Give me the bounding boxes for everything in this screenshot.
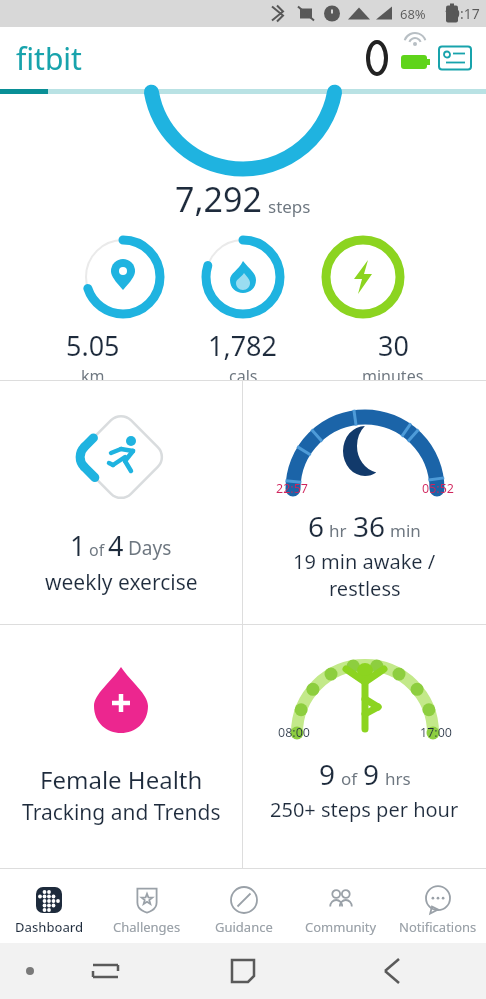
staticText: Challenges xyxy=(113,918,181,936)
button[interactable]: Community xyxy=(292,877,389,943)
staticText: 22:57 xyxy=(276,480,308,497)
staticText: min xyxy=(390,519,421,542)
button[interactable]: 1 xyxy=(0,381,242,624)
staticText: 9 xyxy=(319,755,336,793)
staticText: Days xyxy=(128,535,172,561)
staticText: Notifications xyxy=(399,918,477,936)
staticText: 05:52 xyxy=(422,480,454,497)
staticText: restless xyxy=(329,575,401,602)
staticText: 19:17 xyxy=(444,4,480,23)
staticText: 1,782 xyxy=(208,327,278,364)
staticText: weekly exercise xyxy=(45,568,198,597)
staticText: 250+ steps per hour xyxy=(270,796,459,823)
button[interactable]: Challenges xyxy=(98,877,195,943)
staticText: 08:00 xyxy=(278,724,310,741)
staticText: hr xyxy=(329,519,347,542)
staticText: 68% xyxy=(400,5,426,23)
staticText: 30 xyxy=(378,327,409,364)
button[interactable]: Female Health xyxy=(0,625,242,868)
staticText: 17:00 xyxy=(420,724,452,741)
staticText: km xyxy=(81,365,105,380)
button[interactable]: 08:00 xyxy=(243,625,486,868)
button[interactable]: Dashboard xyxy=(0,877,98,943)
staticText: fitbit xyxy=(16,38,82,79)
button[interactable]: Battery xyxy=(398,41,432,75)
staticText: 5.05 xyxy=(66,327,120,364)
button[interactable]: Guidance xyxy=(195,877,292,943)
staticText: of xyxy=(89,539,105,561)
staticText: 9 xyxy=(363,755,380,793)
staticText: Dashboard xyxy=(15,918,84,936)
button[interactable]: Notifications xyxy=(389,877,486,943)
staticText: Community xyxy=(305,918,377,936)
staticText: Guidance xyxy=(215,918,273,936)
staticText: 1 xyxy=(70,527,86,564)
staticText: 6 xyxy=(308,507,325,545)
staticText: hrs xyxy=(385,767,411,790)
staticText: steps xyxy=(268,195,311,218)
staticText: Female Health xyxy=(40,763,203,796)
staticText: cals xyxy=(229,365,258,380)
button[interactable]: Tracker xyxy=(360,41,394,75)
button[interactable]: Account xyxy=(436,39,474,77)
staticText: 7,292 xyxy=(175,176,262,222)
staticText: minutes xyxy=(362,365,424,380)
staticText: 4 xyxy=(108,527,124,564)
staticText: of xyxy=(341,767,358,790)
button[interactable]: 22:57 xyxy=(243,381,486,624)
staticText: 19 min awake / xyxy=(293,548,436,575)
staticText: 36 xyxy=(353,507,386,545)
staticText: Tracking and Trends xyxy=(22,798,221,827)
